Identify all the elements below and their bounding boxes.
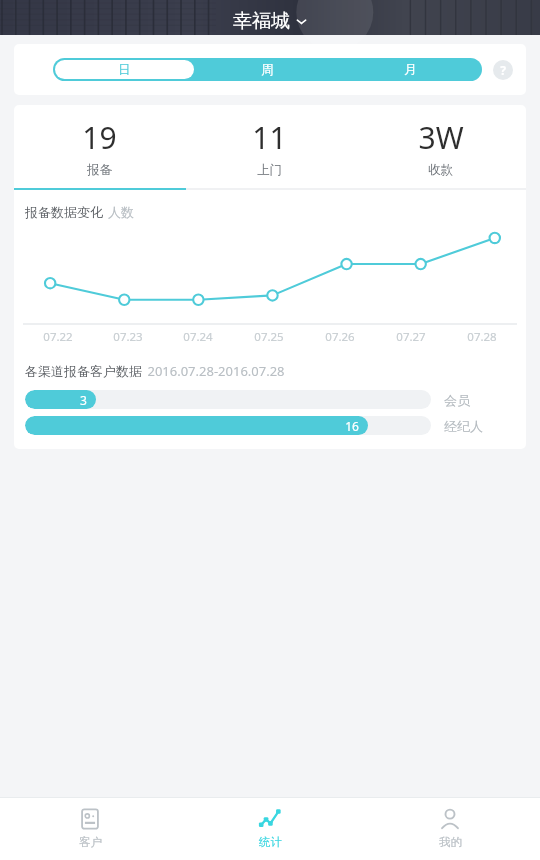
staticText: 07.25 [254, 329, 284, 345]
staticText: 07.23 [113, 329, 143, 345]
staticText: 3 [80, 392, 87, 408]
staticText: 幸福城 [233, 9, 290, 33]
staticText: 各渠道报备客户数据 [25, 363, 142, 379]
staticText: 收款 [428, 162, 453, 178]
button[interactable]: 16 [25, 416, 515, 435]
staticText: 16 [345, 418, 359, 434]
staticText: 日 [118, 62, 131, 78]
staticText: 客户 [79, 835, 102, 849]
button[interactable]: 11 [184, 105, 355, 188]
staticText: 月 [404, 62, 417, 78]
staticText: 统计 [259, 835, 282, 849]
staticText: 2016.07.28-2016.07.28 [147, 362, 285, 380]
staticText: 人数 [108, 204, 134, 220]
staticText: 11 [252, 117, 287, 158]
staticText: 报备数据变化 [25, 204, 103, 220]
staticText: 3W [418, 117, 464, 158]
staticText: 07.22 [43, 329, 73, 345]
staticText: 周 [261, 62, 274, 78]
staticText: 07.26 [325, 329, 355, 345]
button[interactable]: 客户 [0, 797, 180, 860]
button[interactable]: 19 [14, 105, 184, 188]
button[interactable]: 幸福城 [227, 7, 313, 35]
button[interactable]: 周 [198, 60, 337, 79]
button[interactable]: 日 [55, 60, 194, 79]
staticText: 07.24 [183, 329, 213, 345]
staticText: 会员 [444, 392, 470, 408]
button[interactable]: 3 [25, 390, 515, 409]
staticText: 报备 [87, 162, 112, 178]
button[interactable]: 统计 [180, 797, 360, 860]
button[interactable]: 月 [341, 60, 480, 79]
staticText: ? [500, 62, 506, 78]
staticText: 07.28 [467, 329, 497, 345]
staticText: 19 [82, 117, 117, 158]
staticText: 我的 [439, 835, 462, 849]
staticText: 经纪人 [444, 418, 483, 434]
staticText: 07.27 [396, 329, 426, 345]
button[interactable]: Help [493, 60, 513, 80]
staticText: 上门 [257, 162, 282, 178]
button[interactable]: 我的 [360, 797, 540, 860]
button[interactable]: 3W [355, 105, 526, 188]
